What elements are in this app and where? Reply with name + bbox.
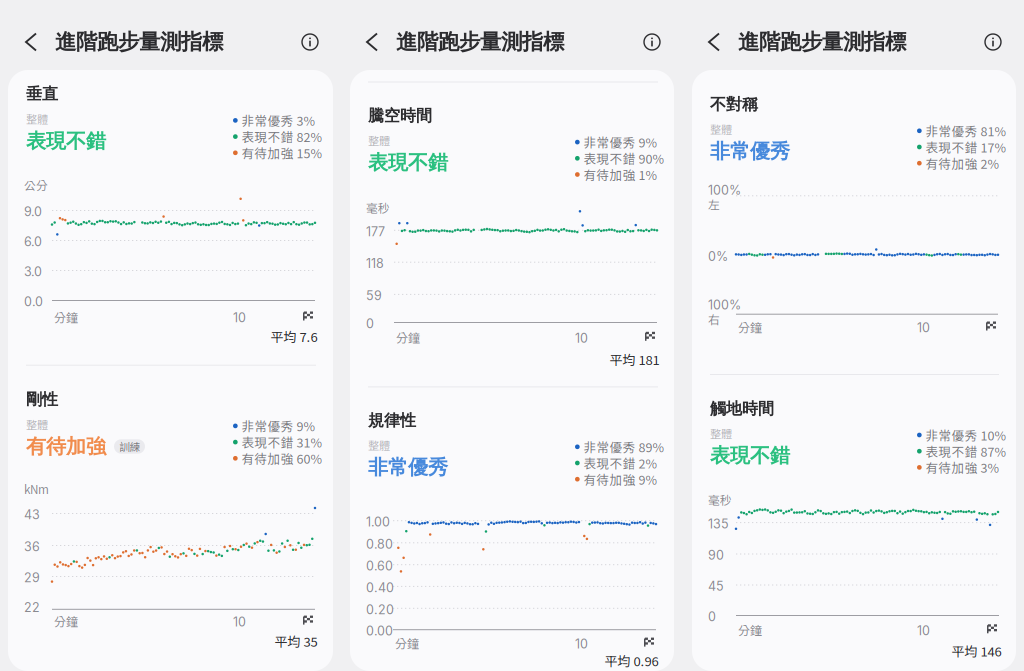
staticText: 毫秒 xyxy=(708,491,732,508)
staticText: 平均 0.96 xyxy=(604,651,658,670)
staticText: 36 xyxy=(24,539,40,554)
staticText: 1.00 xyxy=(366,514,390,530)
staticText: 0 xyxy=(366,316,374,331)
staticText: 45 xyxy=(708,579,724,594)
staticText: 10 xyxy=(575,330,588,346)
staticText: 有待加強 60% xyxy=(242,449,323,467)
staticText: 毫秒 xyxy=(366,199,390,216)
staticText: 0.60 xyxy=(366,558,393,574)
staticText: 43 xyxy=(24,507,40,522)
staticText: 有待加強 1% xyxy=(584,165,658,183)
staticText: 平均 181 xyxy=(609,350,659,369)
staticText: 有待加強 xyxy=(26,434,106,459)
staticText: 10 xyxy=(233,614,246,629)
staticText: 0.80 xyxy=(366,536,393,552)
staticText: 表現不錯 xyxy=(26,128,106,154)
staticText: 整體 xyxy=(710,425,732,441)
staticText: 整體 xyxy=(26,110,48,127)
staticText: 分鐘 xyxy=(54,308,78,326)
staticText: 59 xyxy=(366,288,382,303)
staticText: 分鐘 xyxy=(738,318,762,336)
staticText: 規律性 xyxy=(368,410,416,430)
staticText: 表現不錯 xyxy=(368,150,448,175)
staticText: 進階跑步量測指標 xyxy=(55,29,223,55)
staticText: 訓練 xyxy=(119,439,139,454)
button[interactable]: Information xyxy=(301,20,341,64)
staticText: 非常優秀 xyxy=(368,455,448,480)
staticText: 6.0 xyxy=(24,234,42,249)
staticText: 進階跑步量測指標 xyxy=(396,29,564,55)
staticText: 表現不錯 2% xyxy=(584,454,658,472)
staticText: 非常優秀 10% xyxy=(926,426,1007,444)
staticText: 非常優秀 9% xyxy=(584,133,658,151)
staticText: 非常優秀 9% xyxy=(242,417,316,435)
staticText: 0.20 xyxy=(366,602,394,617)
staticText: 表現不錯 xyxy=(710,443,790,468)
staticText: 100% xyxy=(708,183,741,198)
staticText: 分鐘 xyxy=(738,621,762,638)
staticText: 騰空時間 xyxy=(368,106,432,126)
staticText: 分鐘 xyxy=(395,634,419,652)
staticText: 表現不錯 87% xyxy=(926,442,1007,460)
staticText: 不對稱 xyxy=(710,94,758,114)
staticText: 10 xyxy=(917,623,930,638)
staticText: 0.40 xyxy=(366,580,394,595)
staticText: 有待加強 2% xyxy=(926,154,1000,172)
staticText: 10 xyxy=(233,310,246,325)
staticText: 有待加強 9% xyxy=(584,470,658,488)
staticText: 有待加強 15% xyxy=(242,144,323,162)
staticText: 29 xyxy=(24,570,40,585)
staticText: 10 xyxy=(575,636,588,651)
staticText: 整體 xyxy=(368,437,390,453)
staticText: 3.0 xyxy=(24,264,42,279)
staticText: 右 xyxy=(708,311,720,328)
button[interactable]: Information xyxy=(984,20,1024,64)
staticText: 分鐘 xyxy=(54,612,78,630)
staticText: 平均 146 xyxy=(951,641,1001,660)
staticText: 表現不錯 90% xyxy=(584,149,665,167)
button[interactable]: Back xyxy=(341,20,396,64)
staticText: 表現不錯 82% xyxy=(242,127,323,146)
button[interactable]: Back xyxy=(0,20,55,64)
staticText: 非常優秀 81% xyxy=(926,122,1007,140)
staticText: 0% xyxy=(708,249,728,264)
button[interactable]: Back xyxy=(683,20,738,64)
staticText: 公分 xyxy=(24,176,48,193)
staticText: 9.0 xyxy=(24,204,42,219)
staticText: 剛性 xyxy=(26,389,58,410)
staticText: 觸地時間 xyxy=(710,398,774,419)
staticText: 整體 xyxy=(368,132,390,148)
staticText: 非常優秀 89% xyxy=(584,438,665,456)
staticText: 0.00 xyxy=(366,623,393,639)
staticText: 表現不錯 31% xyxy=(242,433,323,451)
staticText: 非常優秀 xyxy=(710,139,790,164)
staticText: 135 xyxy=(708,516,729,531)
staticText: 100% xyxy=(708,297,741,313)
staticText: 整體 xyxy=(710,121,732,137)
staticText: 118 xyxy=(366,256,384,271)
staticText: 0 xyxy=(708,609,716,624)
staticText: 垂直 xyxy=(26,84,58,104)
button[interactable]: Information xyxy=(643,20,683,64)
staticText: 177 xyxy=(366,224,385,239)
staticText: 90 xyxy=(708,548,724,563)
staticText: 進階跑步量測指標 xyxy=(738,29,906,55)
staticText: 平均 7.6 xyxy=(270,327,317,346)
staticText: 分鐘 xyxy=(396,328,420,346)
staticText: 非常優秀 3% xyxy=(242,111,316,129)
staticText: 有待加強 3% xyxy=(926,458,1000,476)
staticText: 平均 35 xyxy=(274,631,317,650)
staticText: kNm xyxy=(24,480,49,497)
staticText: 0.0 xyxy=(24,294,43,309)
staticText: 整體 xyxy=(26,416,48,432)
staticText: 22 xyxy=(24,600,40,615)
staticText: 10 xyxy=(917,320,930,335)
staticText: 左 xyxy=(708,196,720,213)
staticText: 表現不錯 17% xyxy=(926,138,1007,156)
